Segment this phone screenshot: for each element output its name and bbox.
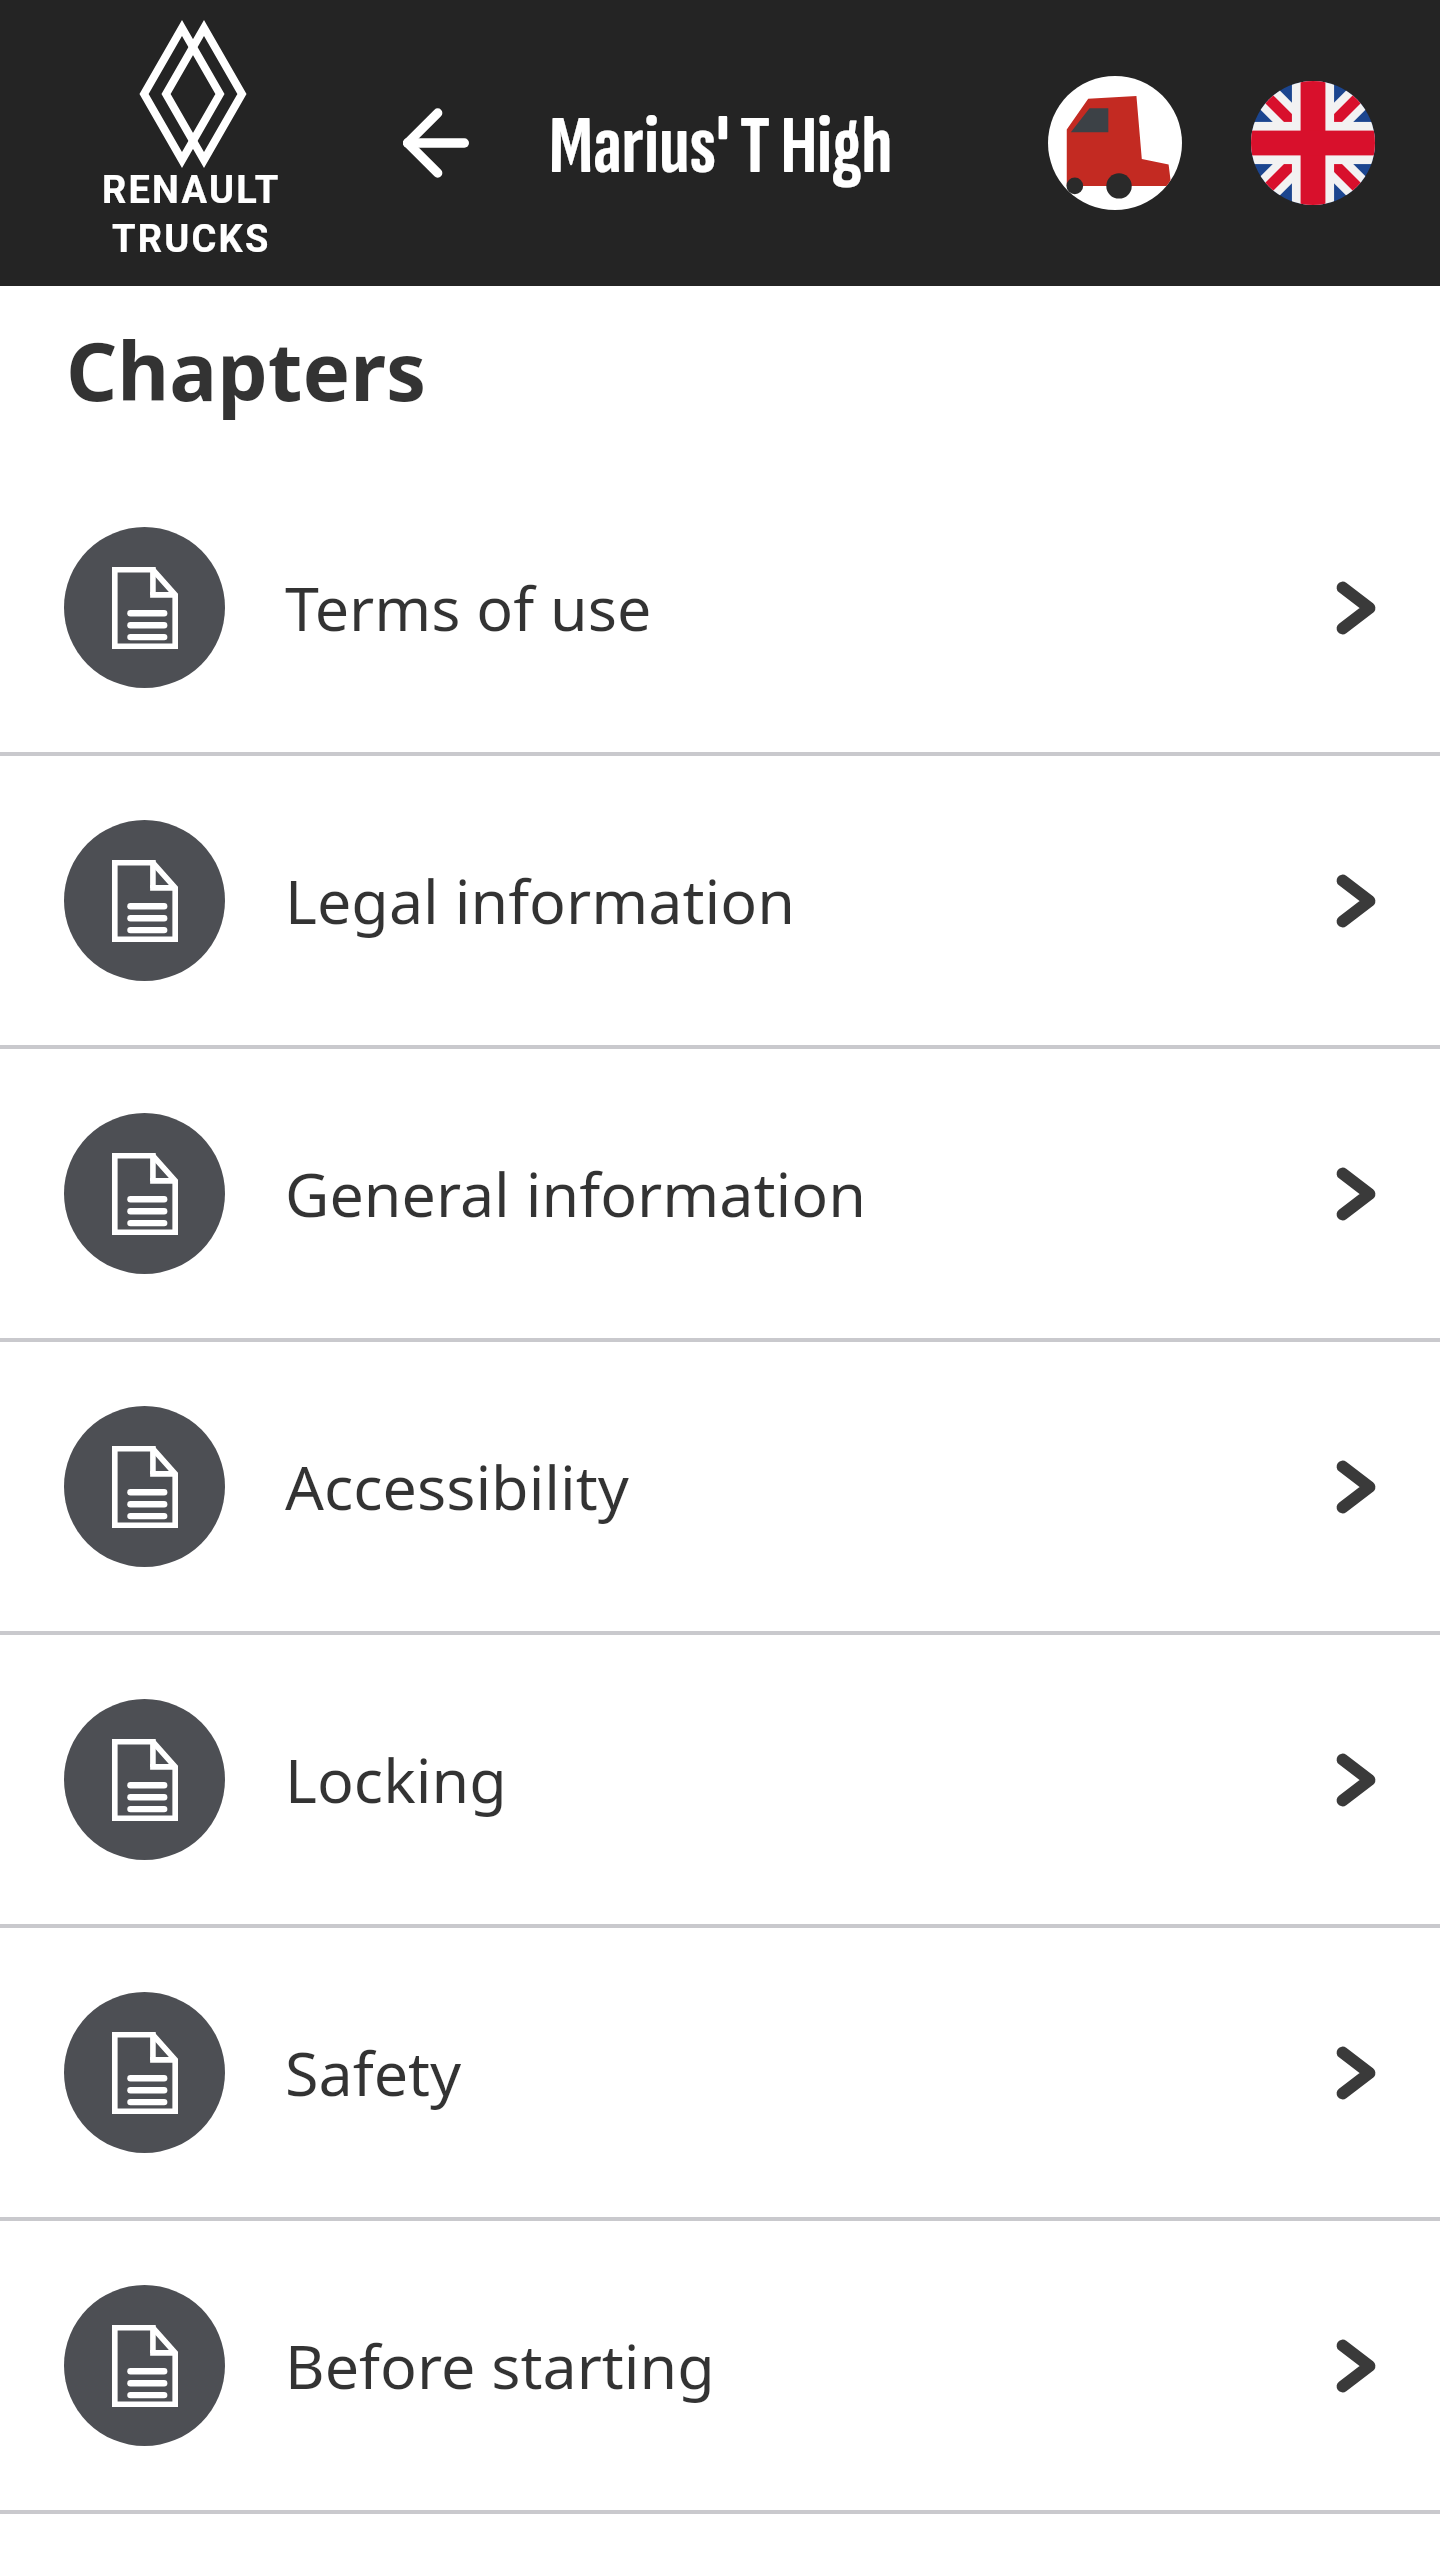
button[interactable]: Renault Trucks <box>78 22 304 262</box>
button[interactable]: Legal information <box>0 756 1440 1045</box>
button[interactable]: Back <box>376 83 496 203</box>
staticText: Legal information <box>285 859 795 942</box>
button[interactable]: General information <box>0 1049 1440 1338</box>
button[interactable]: Locking <box>0 1635 1440 1924</box>
staticText: Locking <box>285 1738 507 1821</box>
button[interactable]: Terms of use <box>0 463 1440 752</box>
staticText: Chapters <box>66 315 427 424</box>
staticText: Accessibility <box>285 1445 629 1528</box>
staticText: Safety <box>285 2031 462 2114</box>
button[interactable]: Before starting <box>0 2221 1440 2510</box>
staticText: RENAULT <box>102 168 281 213</box>
staticText: TRUCKS <box>112 217 271 262</box>
staticText: Before starting <box>285 2324 715 2407</box>
button[interactable]: Safety <box>0 1928 1440 2217</box>
button[interactable]: Accessibility <box>0 1342 1440 1631</box>
button[interactable]: Vehicle <box>1048 76 1182 210</box>
staticText: General information <box>285 1152 866 1235</box>
staticText: Terms of use <box>285 566 652 649</box>
staticText: Marius' T High <box>549 97 893 197</box>
button[interactable]: Language <box>1251 81 1375 205</box>
